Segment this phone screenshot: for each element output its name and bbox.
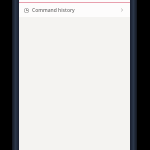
other: History: [24, 8, 29, 13]
button[interactable]: History: [19, 3, 130, 17]
staticText: Command history: [32, 7, 75, 14]
other: Open: [119, 7, 125, 13]
